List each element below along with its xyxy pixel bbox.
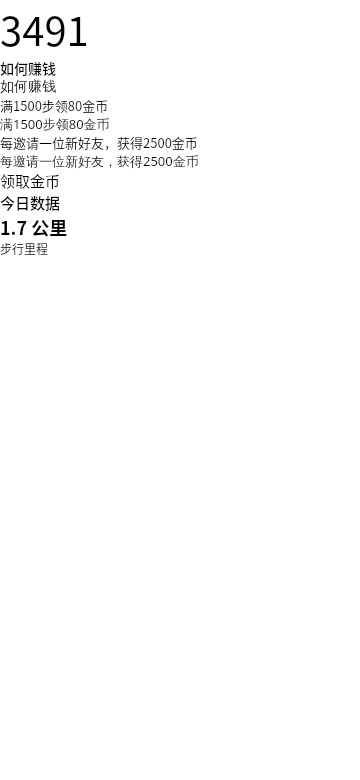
staticText: 1.7 公里 — [0, 214, 68, 240]
staticText: 满1500步领80金币 — [0, 96, 109, 115]
staticText: 步行里程 — [0, 240, 49, 257]
staticText: 今日数据 — [0, 192, 61, 214]
staticText: 满1500步领80金币 — [0, 115, 110, 133]
staticText: 每邀请一位新好友，获得2500金币 — [0, 133, 198, 152]
staticText: 每邀请一位新好友，获得2500金币 — [0, 152, 199, 170]
staticText: 领取金币 — [0, 170, 61, 192]
staticText: 如何赚钱 — [0, 78, 56, 96]
staticText: 如何赚钱 — [0, 58, 56, 78]
staticText: 3491 — [0, 0, 89, 58]
